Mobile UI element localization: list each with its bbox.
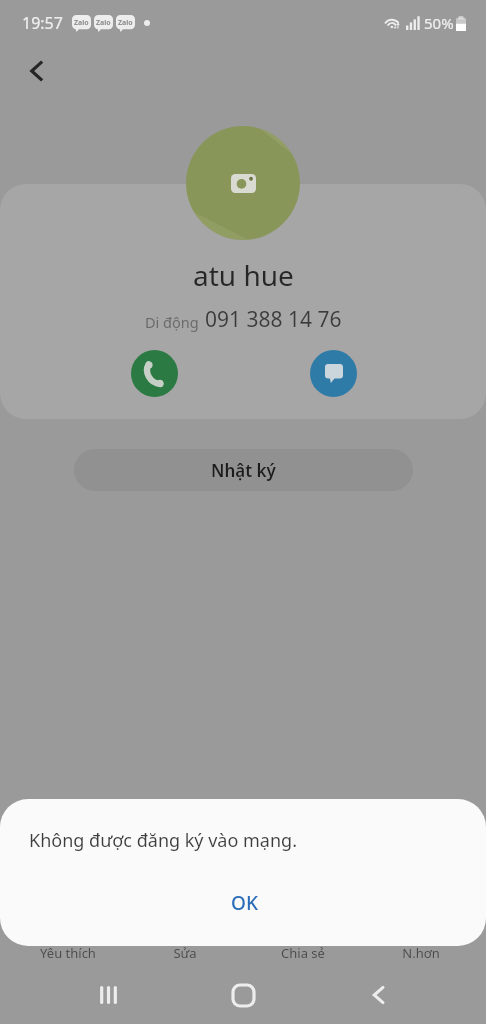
button[interactable]: Call [131, 350, 178, 397]
button[interactable]: Message [310, 350, 357, 397]
button[interactable]: Chia sẻ [244, 944, 362, 972]
staticText: Zalo [74, 18, 89, 28]
staticText: Di động [145, 312, 199, 332]
staticText: 19:57 [22, 12, 63, 34]
staticText: Zalo [96, 18, 111, 28]
button[interactable]: Back [351, 967, 407, 1023]
button[interactable]: Back [14, 48, 60, 94]
button[interactable]: N.hơn [362, 944, 480, 972]
button[interactable]: Sửa [126, 944, 244, 972]
staticText: 091 388 14 76 [205, 305, 342, 334]
staticText: OK [231, 890, 258, 916]
staticText: N.hơn [402, 944, 440, 962]
staticText: Sửa [173, 944, 197, 962]
button[interactable]: Nhật ký [74, 449, 413, 491]
button[interactable]: Yêu thích [9, 944, 126, 972]
staticText: Nhật ký [211, 459, 276, 482]
staticText: Zalo [118, 18, 133, 28]
staticText: 50% [424, 13, 454, 33]
staticText: Chia sẻ [281, 944, 325, 962]
button[interactable]: Contact photo [186, 126, 300, 240]
staticText: Yêu thích [40, 944, 96, 962]
button[interactable]: Home [215, 967, 271, 1023]
button[interactable]: OK [188, 878, 300, 928]
staticText: atu hue [193, 256, 294, 294]
button[interactable]: Recents [80, 967, 136, 1023]
staticText: Không được đăng ký vào mạng. [29, 828, 297, 853]
